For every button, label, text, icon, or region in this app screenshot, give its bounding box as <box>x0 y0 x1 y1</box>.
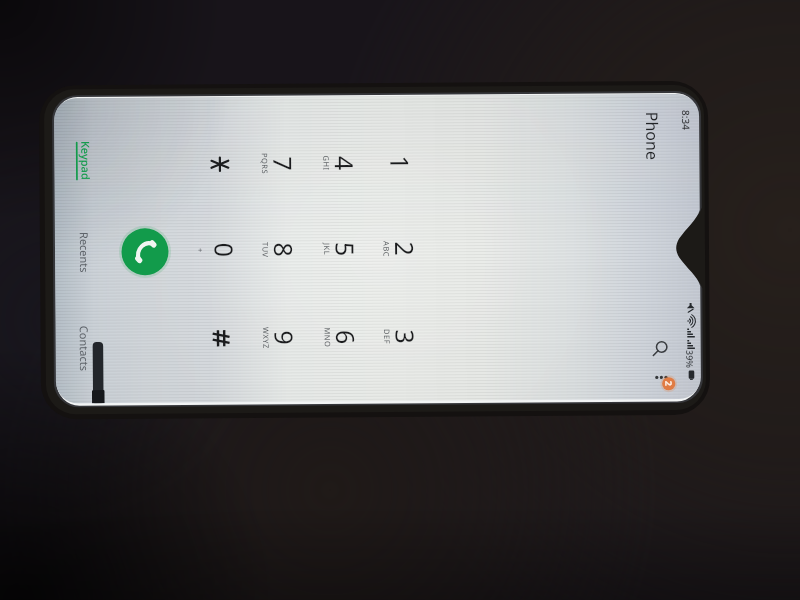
button[interactable]: More options <box>652 366 680 394</box>
button[interactable]: Dial star <box>192 121 250 205</box>
button[interactable]: Dial 9 <box>251 295 309 379</box>
button[interactable]: Dial pound <box>192 295 250 379</box>
button[interactable]: Keypad tab <box>70 128 100 190</box>
button[interactable]: Dial 7 <box>251 121 309 205</box>
button[interactable]: Dial 2 <box>370 207 428 291</box>
button[interactable]: Dial 6 <box>311 295 369 379</box>
button[interactable]: Call <box>121 226 169 274</box>
button[interactable]: Dial 8 <box>251 207 309 291</box>
button[interactable]: Dial 1 <box>370 121 428 205</box>
button[interactable]: Dial 4 <box>311 121 369 205</box>
button[interactable]: Dial 5 <box>311 207 369 291</box>
button[interactable]: Dial 3 <box>370 295 428 379</box>
button[interactable]: Recents tab <box>70 220 100 282</box>
button[interactable]: Dial 0 <box>192 207 250 291</box>
button[interactable]: Search <box>647 335 675 363</box>
button[interactable]: Contacts tab <box>70 315 100 379</box>
